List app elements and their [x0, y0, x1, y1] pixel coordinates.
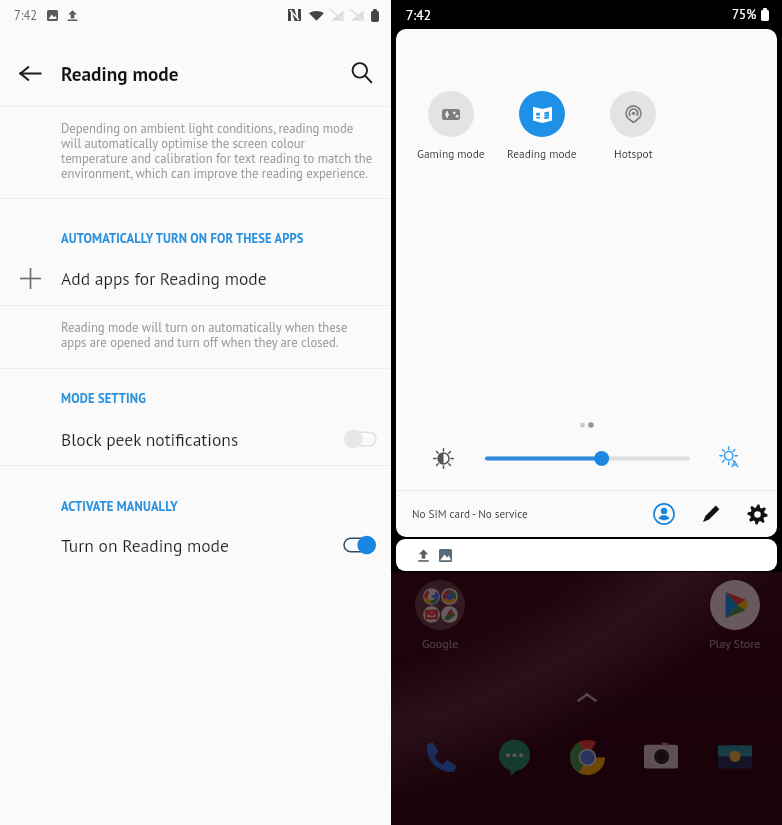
staticText: Reading mode will turn on automatically …: [61, 319, 373, 350]
button[interactable]: Search: [333, 46, 391, 100]
button[interactable]: Chrome: [564, 734, 610, 780]
button[interactable]: Camera: [638, 734, 684, 780]
staticText: Add apps for Reading mode: [61, 267, 267, 290]
staticText: Play Store: [709, 636, 761, 652]
staticText: Google: [422, 636, 459, 652]
staticText: MODE SETTING: [61, 390, 146, 406]
staticText: 75%: [732, 6, 757, 23]
button[interactable]: Google: [401, 580, 479, 652]
button[interactable]: Reading mode: [500, 91, 584, 161]
staticText: Block peek notifications: [61, 428, 239, 451]
staticText: Gaming mode: [417, 146, 485, 161]
button[interactable]: Phone: [417, 734, 463, 780]
staticText: AUTOMATICALLY TURN ON FOR THESE APPS: [61, 230, 304, 246]
staticText: Depending on ambient light conditions, r…: [61, 120, 373, 181]
button[interactable]: Back: [0, 46, 61, 100]
button[interactable]: Edit: [696, 499, 726, 529]
button[interactable]: All apps: [577, 693, 597, 702]
button[interactable]: Hotspot: [591, 91, 675, 161]
button[interactable]: Add apps for Reading mode: [0, 255, 391, 301]
button[interactable]: Gallery: [712, 734, 758, 780]
button[interactable]: Block peek notifications: [0, 415, 391, 463]
staticText: 7:42: [406, 6, 432, 23]
staticText: Turn on Reading mode: [61, 534, 229, 557]
button[interactable]: Gaming mode: [409, 91, 493, 161]
button[interactable]: Turn on Reading mode: [0, 521, 391, 569]
button[interactable]: Messages: [491, 734, 537, 780]
button[interactable]: Account: [649, 499, 679, 529]
staticText: Hotspot: [614, 146, 653, 161]
staticText: No SIM card - No service: [412, 507, 528, 521]
button[interactable]: Play Store: [696, 580, 774, 652]
button[interactable]: Settings: [742, 499, 772, 529]
staticText: Reading mode: [61, 61, 179, 86]
staticText: Reading mode: [507, 146, 577, 161]
staticText: ACTIVATE MANUALLY: [61, 498, 178, 514]
staticText: 7:42: [14, 7, 38, 23]
